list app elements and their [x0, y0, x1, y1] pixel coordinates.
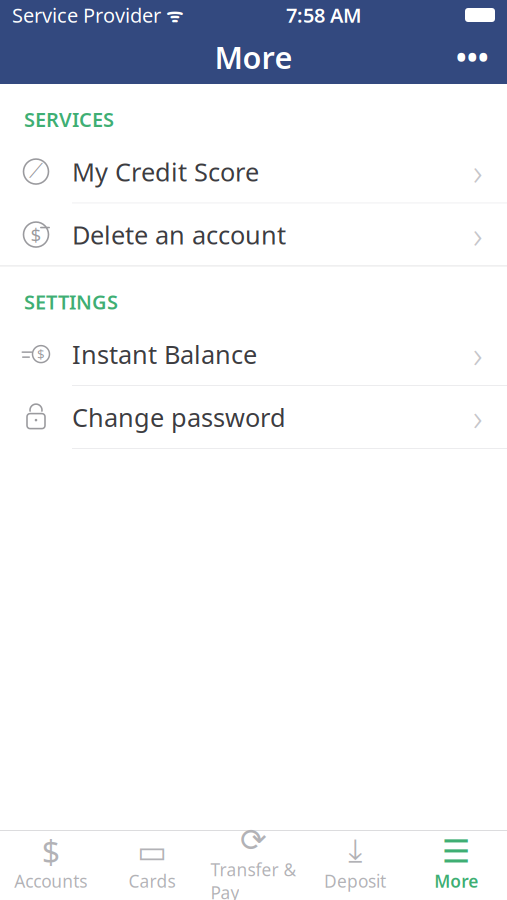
staticText: 7:58 AM	[286, 2, 362, 28]
button[interactable]: ⟳	[203, 819, 304, 900]
button[interactable]: $	[0, 323, 507, 385]
staticText: More	[434, 869, 478, 892]
staticText: ›	[473, 330, 483, 378]
staticText: $	[37, 345, 45, 363]
staticText: Accounts	[14, 869, 87, 892]
button[interactable]: ⤓	[304, 830, 406, 900]
staticText: ›	[473, 211, 483, 258]
staticText: ›	[473, 148, 483, 195]
button[interactable]: ⟋	[0, 141, 507, 203]
staticText: $	[42, 830, 60, 873]
staticText: My Credit Score	[72, 155, 259, 188]
staticText: Change password	[72, 400, 286, 434]
button[interactable]: ▭	[101, 830, 203, 900]
staticText: Delete an account	[72, 218, 286, 251]
staticText: More	[214, 37, 292, 77]
staticText: Transfer & Pay	[210, 858, 296, 900]
staticText: •••	[456, 38, 489, 76]
staticText: $	[30, 222, 41, 247]
button[interactable]: Change password	[0, 386, 507, 448]
staticText: Instant Balance	[72, 337, 257, 371]
button[interactable]: $	[0, 830, 101, 900]
staticText: ›	[473, 393, 483, 441]
staticText: ▭	[137, 833, 167, 870]
staticText: Deposit	[324, 869, 386, 892]
staticText: ⤓	[348, 836, 362, 867]
button[interactable]: More options	[438, 26, 507, 88]
staticText: SETTINGS	[24, 289, 118, 315]
staticText: ☰	[442, 833, 471, 870]
staticText: ⟋	[29, 162, 43, 181]
button[interactable]: ☰	[406, 830, 507, 900]
staticText: Cards	[129, 869, 176, 892]
staticText: Service Provider	[12, 2, 161, 28]
button[interactable]: $	[0, 204, 507, 266]
staticText: ᯤ	[161, 3, 183, 27]
staticText: SERVICES	[24, 106, 114, 133]
staticText: ⟳	[240, 822, 267, 858]
